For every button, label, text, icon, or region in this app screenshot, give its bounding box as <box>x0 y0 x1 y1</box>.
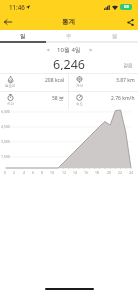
button[interactable]: Next day <box>85 44 96 55</box>
staticText: 2 <box>13 170 15 175</box>
staticText: 거리 <box>76 84 83 88</box>
button[interactable]: 월 <box>92 30 138 41</box>
staticText: 18 <box>95 170 99 175</box>
staticText: 걸음 <box>123 62 133 68</box>
staticText: 20 <box>107 170 111 175</box>
staticText: 주 <box>66 33 72 40</box>
staticText: 58 분 <box>52 95 65 102</box>
staticText: 3.87 km <box>116 77 135 84</box>
staticText: 월 <box>112 33 118 40</box>
staticText: 3,000 <box>1 139 10 144</box>
staticText: 시간 <box>7 102 14 106</box>
staticText: 11:46 <box>9 3 25 11</box>
staticText: 일 <box>20 33 26 40</box>
staticText: 12 <box>62 170 66 175</box>
staticText: 통계 <box>62 18 76 26</box>
staticText: 칼로리 <box>5 84 16 88</box>
staticText: 속도 <box>76 102 83 106</box>
staticText: 68 <box>124 4 129 10</box>
staticText: 8 <box>41 170 43 175</box>
staticText: 4 <box>23 170 25 175</box>
staticText: 22 <box>118 170 122 175</box>
staticText: 24 <box>129 170 133 175</box>
button[interactable]: 칼로리 <box>4 74 65 86</box>
staticText: 10월 4일 <box>57 46 81 54</box>
button[interactable]: 일 <box>0 30 46 41</box>
staticText: 0 <box>4 170 6 175</box>
button[interactable]: Previous day <box>42 44 53 55</box>
button[interactable]: 속도 <box>73 92 135 104</box>
staticText: 14 <box>73 170 77 175</box>
button[interactable]: Share <box>123 15 137 29</box>
button[interactable]: 거리 <box>73 74 135 86</box>
staticText: 208 kcal <box>45 77 65 84</box>
staticText: 10 <box>50 170 54 175</box>
button[interactable]: 시간 <box>4 92 65 104</box>
staticText: 6,000 <box>1 109 10 114</box>
staticText: 16 <box>84 170 88 175</box>
staticText: 6,246 <box>53 56 85 70</box>
staticText: 2.76 km/h <box>111 95 135 102</box>
button[interactable]: 주 <box>46 30 92 41</box>
staticText: 1,500 <box>1 154 10 159</box>
staticText: 4,500 <box>1 124 10 129</box>
button[interactable]: Back <box>0 14 16 30</box>
staticText: 6 <box>32 170 34 175</box>
